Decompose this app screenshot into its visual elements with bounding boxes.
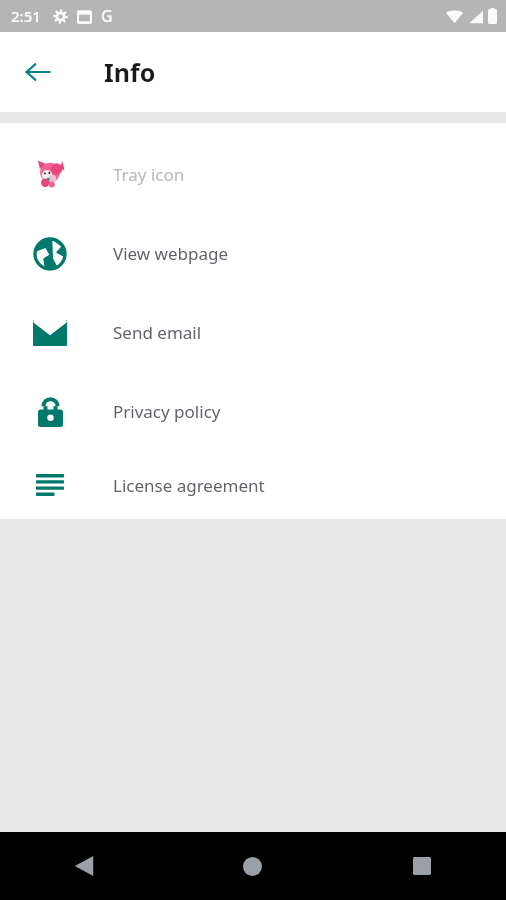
staticText: 2:51 <box>11 6 41 26</box>
staticText: G <box>101 5 113 27</box>
button[interactable]: Recent apps <box>337 832 506 900</box>
button[interactable]: Back <box>10 44 66 100</box>
button[interactable]: View webpage <box>0 214 506 293</box>
button[interactable]: Send email <box>0 293 506 372</box>
staticText: License agreement <box>113 474 265 497</box>
staticText: Info <box>104 55 156 89</box>
button[interactable]: Tray icon <box>0 135 506 214</box>
button[interactable]: Back <box>0 832 168 900</box>
staticText: Send email <box>113 321 202 344</box>
button[interactable]: License agreement <box>0 451 506 519</box>
staticText: Privacy policy <box>113 400 221 423</box>
button[interactable]: Home <box>168 832 337 900</box>
button[interactable]: Privacy policy <box>0 372 506 451</box>
staticText: View webpage <box>113 242 229 265</box>
staticText: Tray icon <box>113 163 185 186</box>
